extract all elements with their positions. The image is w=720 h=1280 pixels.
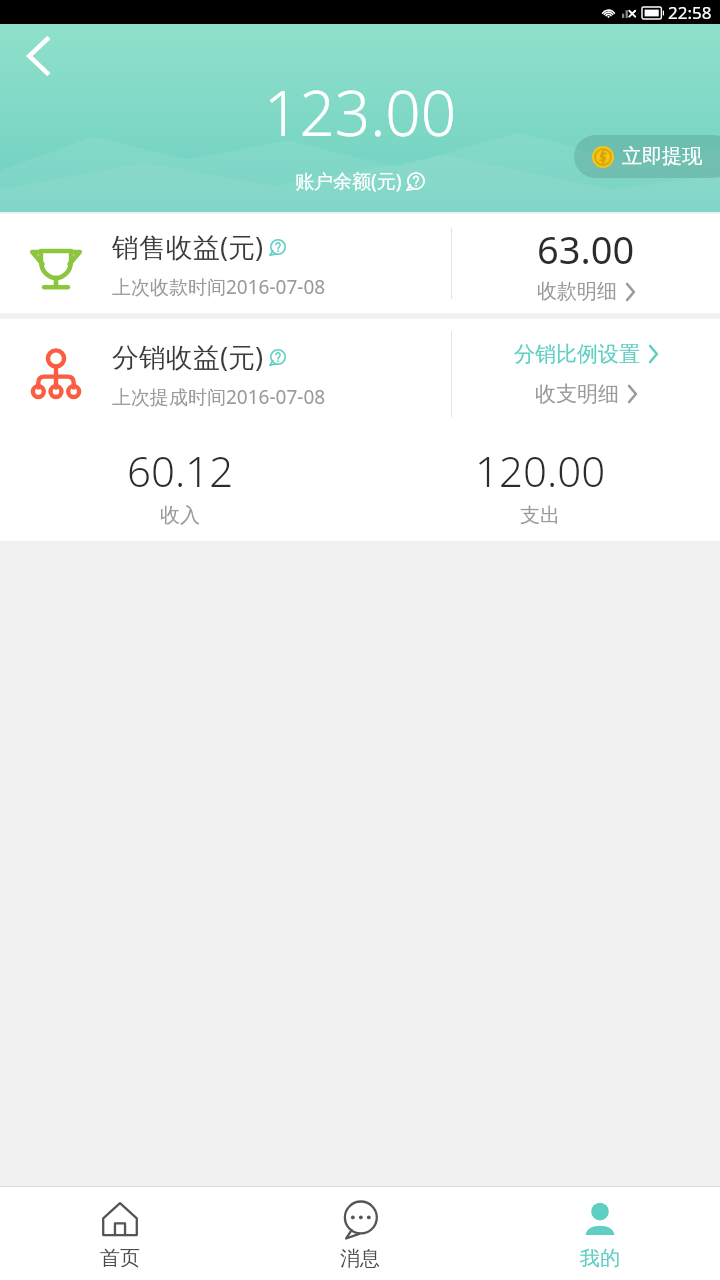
button[interactable]: 分销收益(元) xyxy=(0,319,720,429)
staticText: 收支明细 xyxy=(535,381,619,407)
staticText: 我的 xyxy=(580,1246,620,1271)
staticText: 销售收益(元) xyxy=(112,228,264,265)
staticText: 首页 xyxy=(100,1246,140,1271)
staticText: 上次提成时间2016-07-08 xyxy=(112,384,326,410)
staticText: 支出 xyxy=(520,503,560,528)
staticText: 123.00 xyxy=(264,70,457,154)
staticText: 消息 xyxy=(340,1246,380,1271)
button[interactable]: Back xyxy=(12,30,64,82)
button[interactable]: 消息 xyxy=(240,1187,480,1280)
button[interactable]: 63.00 xyxy=(452,223,720,304)
button[interactable]: 120.00 xyxy=(360,429,720,541)
staticText: 分销比例设置 xyxy=(514,341,640,367)
staticText: 收款明细 xyxy=(537,279,617,304)
button[interactable]: 收支明细 xyxy=(535,381,637,407)
staticText: 60.12 xyxy=(127,442,234,499)
button[interactable]: 分销比例设置 xyxy=(514,341,658,367)
button[interactable]: 销售收益(元) xyxy=(0,214,720,313)
staticText: 收入 xyxy=(160,503,200,528)
staticText: 22:58 xyxy=(668,1,712,24)
button[interactable]: 60.12 xyxy=(0,429,360,541)
staticText: 63.00 xyxy=(537,223,635,275)
staticText: 上次收款时间2016-07-08 xyxy=(112,274,326,300)
staticText: 120.00 xyxy=(475,442,606,499)
staticText: 分销收益(元) xyxy=(112,338,264,375)
button[interactable]: 我的 xyxy=(480,1187,720,1280)
button[interactable]: 立即提现 xyxy=(574,135,720,178)
staticText: 立即提现 xyxy=(622,144,702,169)
button[interactable]: 首页 xyxy=(0,1187,240,1280)
staticText: 账户余额(元) xyxy=(295,168,402,194)
